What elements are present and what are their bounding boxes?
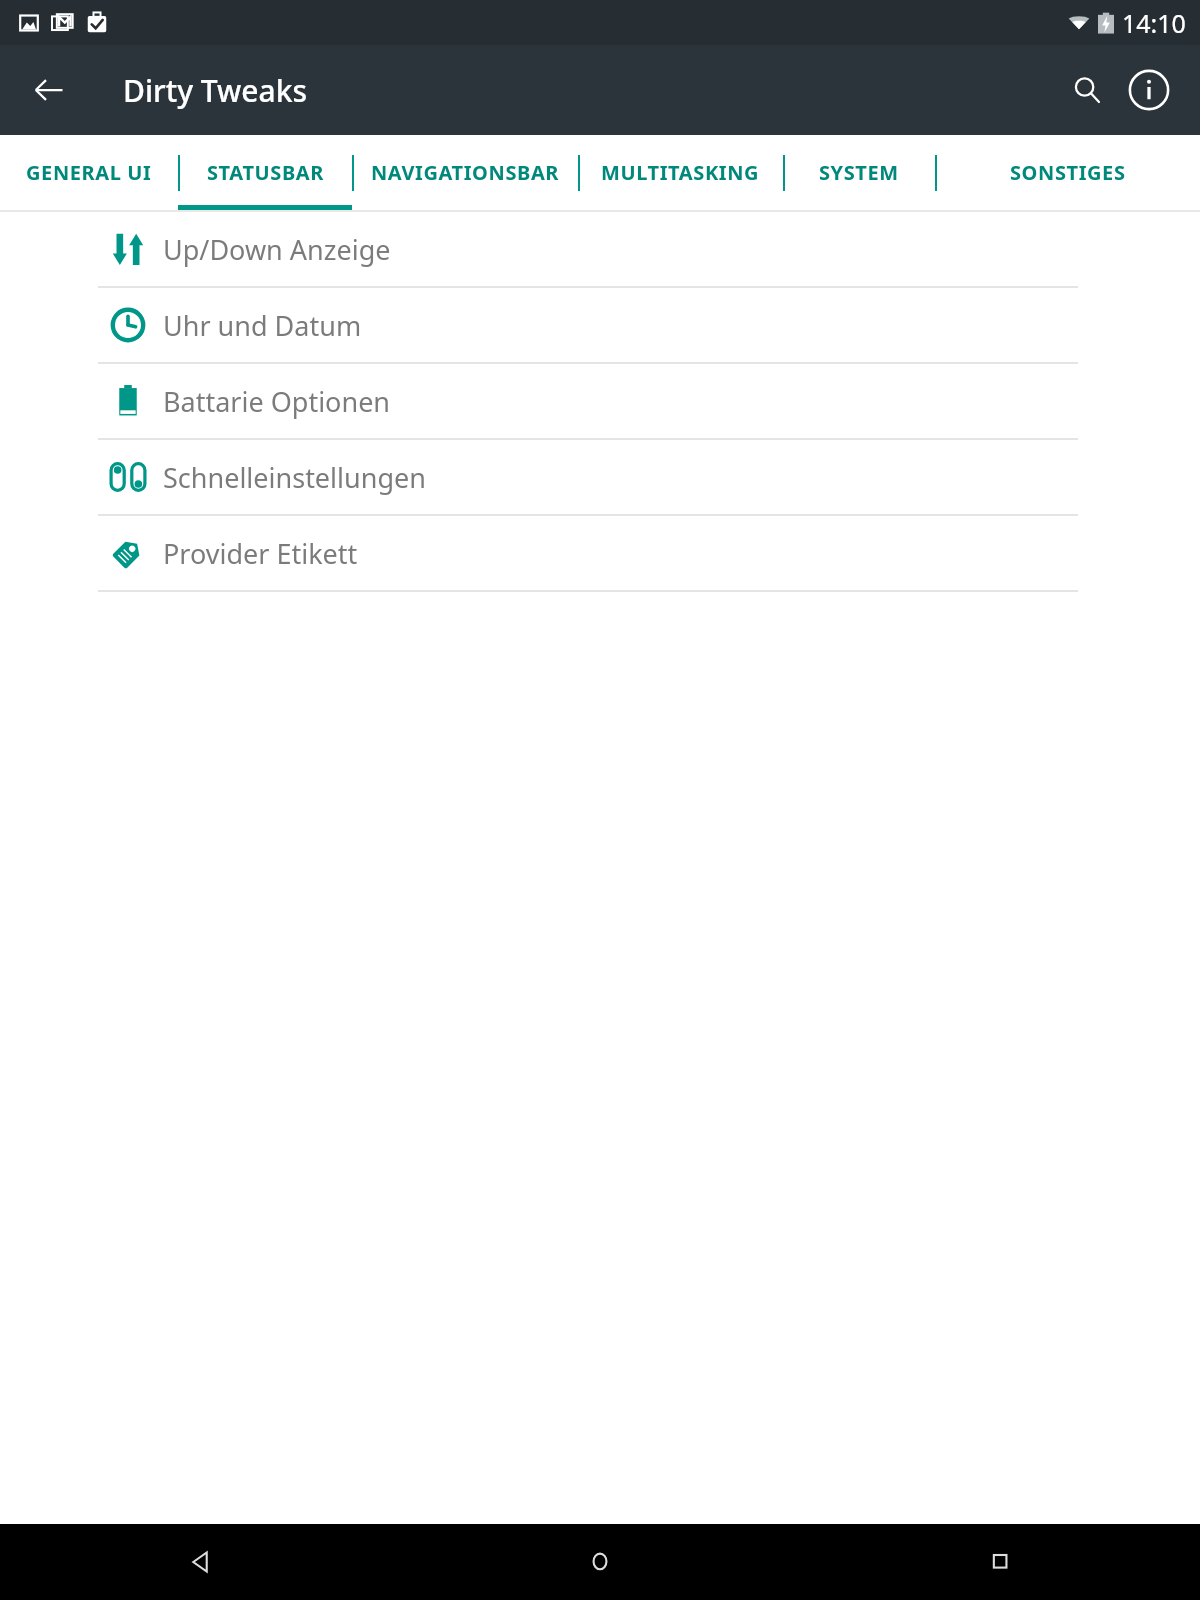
button[interactable]: Home xyxy=(400,1524,800,1600)
staticText: Battarie Optionen xyxy=(163,383,391,420)
staticText: GENERAL UI xyxy=(26,159,152,186)
button[interactable]: Back xyxy=(0,1524,400,1600)
button[interactable]: Battarie Optionen xyxy=(0,364,1200,438)
staticText: Up/Down Anzeige xyxy=(163,231,391,268)
button[interactable]: Back xyxy=(20,61,78,119)
button[interactable]: SYSTEM xyxy=(783,135,935,210)
button[interactable]: STATUSBAR xyxy=(178,135,352,210)
staticText: SYSTEM xyxy=(819,159,899,186)
button[interactable]: GENERAL UI xyxy=(0,135,178,210)
staticText: NAVIGATIONSBAR xyxy=(371,159,560,186)
staticText: SONSTIGES xyxy=(1010,159,1126,186)
staticText: STATUSBAR xyxy=(207,159,324,186)
staticText: Dirty Tweaks xyxy=(123,70,308,111)
button[interactable]: Provider Etikett xyxy=(0,516,1200,590)
button[interactable]: Search xyxy=(1056,59,1118,121)
button[interactable]: SONSTIGES xyxy=(935,135,1200,210)
button[interactable]: Uhr und Datum xyxy=(0,288,1200,362)
staticText: Uhr und Datum xyxy=(163,307,362,344)
staticText: MULTITASKING xyxy=(601,159,760,186)
staticText: 14:10 xyxy=(1122,6,1186,40)
staticText: Provider Etikett xyxy=(163,535,358,572)
button[interactable]: Info xyxy=(1118,59,1180,121)
staticText: Schnelleinstellungen xyxy=(163,459,426,496)
button[interactable]: Up/Down Anzeige xyxy=(0,212,1200,286)
button[interactable]: NAVIGATIONSBAR xyxy=(352,135,578,210)
button[interactable]: Schnelleinstellungen xyxy=(0,440,1200,514)
button[interactable]: Recents xyxy=(800,1524,1200,1600)
button[interactable]: MULTITASKING xyxy=(578,135,783,210)
